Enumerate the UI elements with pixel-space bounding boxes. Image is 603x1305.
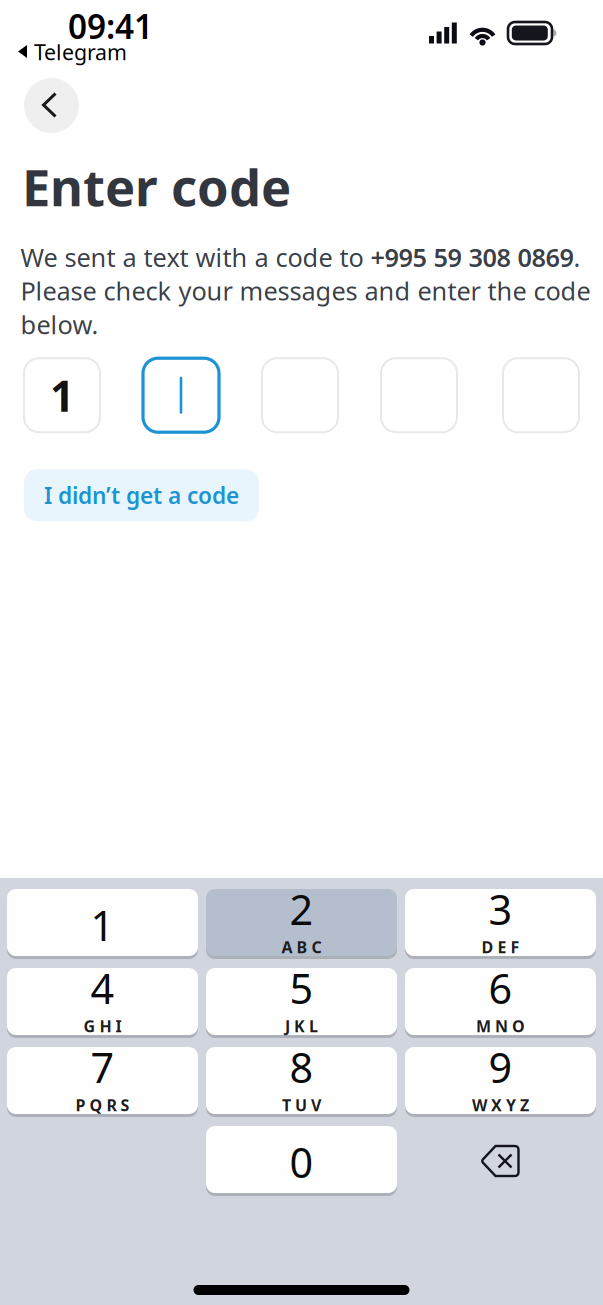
staticText: 0 xyxy=(289,1135,313,1189)
button[interactable]: 5 xyxy=(206,968,397,1038)
staticText: G H I xyxy=(83,1015,121,1036)
staticText: P Q R S xyxy=(75,1094,129,1115)
button[interactable]: 2 xyxy=(206,889,397,959)
button[interactable]: 9 xyxy=(405,1047,596,1117)
button[interactable]: Empty code digit xyxy=(381,358,457,432)
button[interactable]: 3 xyxy=(405,889,596,959)
staticText: 7 xyxy=(90,1039,114,1094)
staticText: 6 xyxy=(488,960,512,1015)
button[interactable]: I didn’t get a code xyxy=(24,469,259,521)
button[interactable]: 4 xyxy=(7,968,198,1038)
button[interactable]: 0 xyxy=(206,1126,397,1196)
staticText: 09:41 xyxy=(68,4,153,48)
staticText: I didn’t get a code xyxy=(44,480,239,510)
staticText: 2 xyxy=(289,881,313,936)
button[interactable]: Empty code digit xyxy=(143,358,219,432)
staticText: A B C xyxy=(281,936,321,957)
button[interactable]: 1 xyxy=(7,889,198,959)
staticText: Telegram xyxy=(34,38,127,66)
button[interactable]: Delete xyxy=(405,1126,596,1196)
staticText: T U V xyxy=(282,1094,321,1115)
staticText: M N O xyxy=(476,1015,525,1036)
staticText: J K L xyxy=(285,1015,318,1036)
staticText: D E F xyxy=(481,936,519,957)
staticText: We sent a text with a code to +995 59 30… xyxy=(20,240,590,341)
staticText: W X Y Z xyxy=(472,1094,529,1115)
staticText: 1 xyxy=(50,367,74,424)
staticText: 4 xyxy=(90,960,114,1015)
staticText: 9 xyxy=(488,1039,512,1094)
button[interactable]: Code digit 1 xyxy=(24,358,100,432)
staticText: 1 xyxy=(90,898,114,952)
button[interactable]: 8 xyxy=(206,1047,397,1117)
button[interactable]: 7 xyxy=(7,1047,198,1117)
staticText: 3 xyxy=(488,881,512,936)
button[interactable]: Empty code digit xyxy=(503,358,579,432)
button[interactable]: Empty code digit xyxy=(262,358,338,432)
staticText: 8 xyxy=(289,1039,313,1094)
staticText: Enter code xyxy=(22,153,291,220)
staticText: 5 xyxy=(289,960,313,1015)
button[interactable]: 6 xyxy=(405,968,596,1038)
button[interactable]: Back xyxy=(24,78,79,133)
